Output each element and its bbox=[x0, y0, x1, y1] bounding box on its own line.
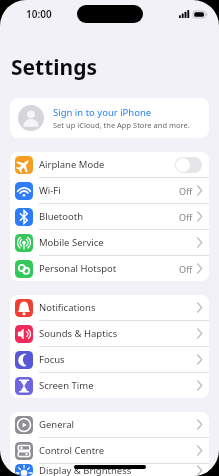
staticText: Set up iCloud, the App Store and more. bbox=[53, 120, 190, 130]
button[interactable]: Personal Hotspot bbox=[10, 256, 209, 281]
button[interactable]: Wi-Fi bbox=[10, 178, 209, 204]
button[interactable]: Sounds & Haptics bbox=[10, 321, 209, 347]
staticText: Control Centre bbox=[39, 444, 197, 457]
button[interactable]: Notifications bbox=[10, 295, 209, 321]
staticText: Personal Hotspot bbox=[39, 262, 179, 275]
button[interactable]: Bluetooth bbox=[10, 204, 209, 230]
staticText: Off bbox=[179, 211, 193, 223]
staticText: General bbox=[39, 418, 197, 431]
staticText: Sounds & Haptics bbox=[39, 327, 197, 340]
staticText: Off bbox=[179, 263, 193, 275]
staticText: Airplane Mode bbox=[39, 158, 175, 171]
staticText: Wi-Fi bbox=[39, 184, 179, 197]
button[interactable]: Sign in to your iPhone bbox=[10, 98, 209, 138]
staticText: Bluetooth bbox=[39, 210, 179, 223]
staticText: Focus bbox=[39, 353, 197, 366]
button[interactable]: Control Centre bbox=[10, 438, 209, 464]
button[interactable]: Mobile Service bbox=[10, 230, 209, 256]
staticText: Settings bbox=[11, 53, 98, 82]
staticText: Screen Time bbox=[39, 379, 197, 392]
button[interactable]: Display & Brightness bbox=[10, 464, 209, 476]
button[interactable]: Focus bbox=[10, 347, 209, 373]
staticText: Off bbox=[179, 185, 193, 197]
staticText: Mobile Service bbox=[39, 236, 197, 249]
staticText: Sign in to your iPhone bbox=[53, 106, 152, 119]
button[interactable]: Screen Time bbox=[10, 373, 209, 398]
button[interactable]: General bbox=[10, 412, 209, 438]
staticText: Display & Brightness bbox=[39, 464, 197, 476]
staticText: Notifications bbox=[39, 301, 197, 314]
button[interactable]: Airplane Mode bbox=[10, 152, 209, 178]
staticText: 10:00 bbox=[26, 7, 52, 21]
